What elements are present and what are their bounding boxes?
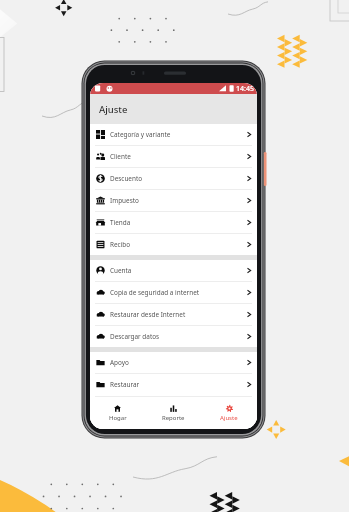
staticText: Descargar datos	[110, 332, 160, 341]
other: Ajuste	[226, 405, 233, 412]
button[interactable]: Reporte	[145, 397, 201, 429]
staticText: Apoyo	[110, 358, 129, 367]
button[interactable]: Cuenta	[90, 260, 257, 281]
button[interactable]: Recibo	[90, 234, 257, 255]
button[interactable]: Cliente	[90, 146, 257, 167]
staticText: Reporte	[162, 414, 185, 422]
staticText: Categoría y variante	[110, 130, 171, 139]
staticText: Ajuste	[220, 414, 238, 422]
staticText: Descuento	[110, 174, 143, 183]
staticText: Cuenta	[110, 266, 132, 275]
button[interactable]: Descargar datos	[90, 326, 257, 347]
button[interactable]: Ajuste	[201, 397, 257, 429]
button[interactable]: Tienda	[90, 212, 257, 233]
button[interactable]: Descuento	[90, 168, 257, 189]
button[interactable]: Copia de seguridad a internet	[90, 282, 257, 303]
button[interactable]: Restaurar	[90, 374, 257, 395]
staticText: Hogar	[109, 414, 127, 422]
other: Reporte	[170, 405, 177, 412]
staticText: Restaurar desde Internet	[110, 310, 186, 319]
button[interactable]: Restaurar desde Internet	[90, 304, 257, 325]
button[interactable]: Apoyo	[90, 352, 257, 373]
staticText: Ajuste	[99, 103, 128, 116]
button[interactable]: Impuesto	[90, 190, 257, 211]
staticText: Tienda	[110, 218, 131, 227]
staticText: Copia de seguridad a internet	[110, 288, 200, 297]
button[interactable]: Categoría y variante	[90, 124, 257, 145]
other: Hogar	[114, 405, 121, 412]
button[interactable]: Hogar	[90, 397, 145, 429]
staticText: 14:45	[236, 84, 254, 94]
staticText: Impuesto	[110, 196, 139, 205]
staticText: Restaurar	[110, 380, 140, 389]
staticText: Recibo	[110, 240, 131, 249]
staticText: Cliente	[110, 152, 131, 161]
